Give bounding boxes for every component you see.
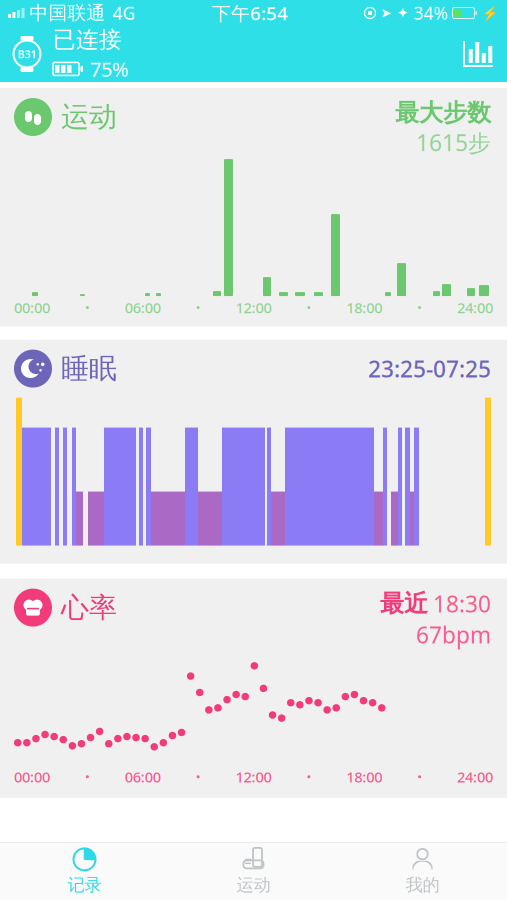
staticText: 06:00: [125, 298, 161, 317]
staticText: 已连接: [53, 26, 122, 54]
staticText: 24:00: [457, 767, 493, 786]
button[interactable]: 心率: [0, 579, 507, 798]
staticText: 心率: [61, 590, 117, 625]
staticText: 00:00: [14, 298, 50, 317]
staticText: 34%: [413, 1, 447, 24]
staticText: 我的: [405, 874, 439, 896]
button[interactable]: 统计图表: [463, 35, 507, 73]
button[interactable]: B31: [0, 26, 129, 82]
staticText: 12:00: [235, 767, 271, 786]
staticText: 最近: [380, 589, 428, 618]
staticText: 67bpm: [416, 620, 491, 650]
staticText: ⚡: [482, 5, 499, 21]
staticText: 1615步: [416, 127, 491, 158]
staticText: 24:00: [457, 298, 493, 317]
staticText: 最大步数: [395, 98, 491, 127]
staticText: 23:25-07:25: [368, 353, 491, 384]
staticText: ✦: [396, 5, 408, 21]
staticText: 记录: [67, 874, 101, 896]
staticText: 18:00: [346, 298, 382, 317]
staticText: 运动: [236, 874, 270, 896]
button[interactable]: 我的: [338, 841, 507, 900]
staticText: 00:00: [14, 767, 50, 786]
button[interactable]: 运动: [169, 841, 338, 900]
staticText: B31: [17, 47, 36, 61]
staticText: 18:00: [346, 767, 382, 786]
staticText: 12:00: [235, 298, 271, 317]
staticText: 中国联通: [29, 1, 105, 24]
staticText: 运动: [61, 100, 117, 134]
staticText: ➤: [380, 5, 391, 20]
staticText: 下午6:54: [212, 1, 288, 25]
button[interactable]: 运动: [0, 88, 507, 327]
staticText: 06:00: [125, 767, 161, 786]
button[interactable]: 睡眠: [0, 340, 507, 564]
staticText: 4G: [112, 1, 135, 24]
staticText: 睡眠: [61, 351, 117, 386]
button[interactable]: 记录: [0, 841, 169, 900]
staticText: 18:30: [433, 589, 491, 619]
staticText: 75%: [90, 56, 129, 82]
